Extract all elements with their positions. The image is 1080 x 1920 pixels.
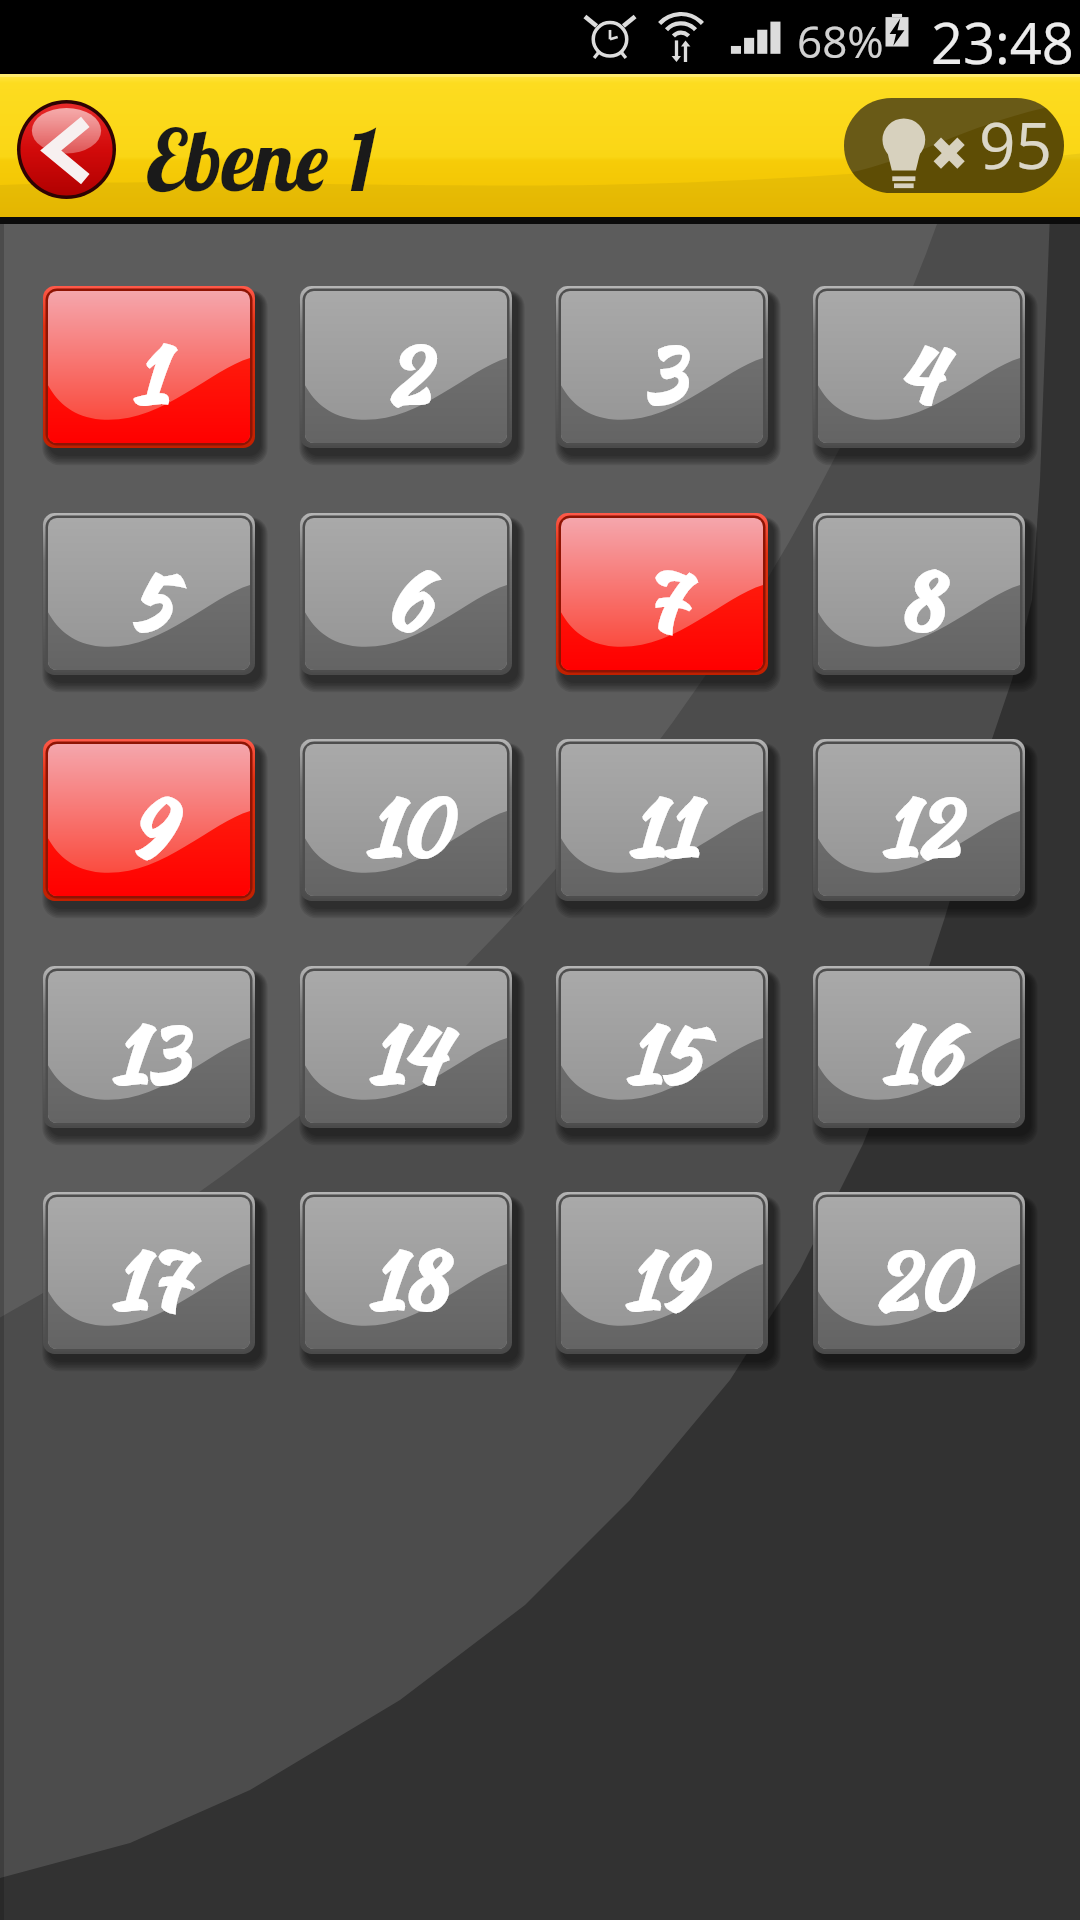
- staticText: 4: [898, 319, 942, 429]
- staticText: 1: [133, 319, 167, 429]
- staticText: 11: [629, 772, 697, 882]
- staticText: 16: [882, 999, 959, 1109]
- button[interactable]: 5: [43, 513, 255, 675]
- staticText: 11: [629, 772, 697, 882]
- staticText: 10: [366, 772, 449, 882]
- staticText: 15: [626, 999, 701, 1109]
- staticText: 14: [369, 999, 445, 1109]
- button[interactable]: 6: [300, 513, 512, 675]
- staticText: 12: [882, 772, 959, 882]
- button[interactable]: Hints: 95: [844, 98, 1064, 193]
- staticText: 1: [133, 319, 167, 429]
- staticText: 20: [874, 1225, 966, 1335]
- button[interactable]: 12: [813, 739, 1025, 901]
- button[interactable]: 19: [556, 1192, 768, 1354]
- button[interactable]: 10: [300, 739, 512, 901]
- staticText: 3: [642, 319, 685, 429]
- staticText: 10: [366, 772, 449, 882]
- staticText: 13: [112, 999, 188, 1109]
- staticText: 23:48: [931, 4, 1074, 78]
- staticText: 5: [130, 546, 171, 656]
- button[interactable]: 20: [813, 1192, 1025, 1354]
- staticText: 9: [129, 772, 172, 882]
- button[interactable]: 11: [556, 739, 768, 901]
- staticText: 7: [642, 546, 685, 656]
- staticText: 19: [625, 1225, 701, 1335]
- staticText: 18: [369, 1225, 446, 1335]
- button[interactable]: 18: [300, 1192, 512, 1354]
- staticText: Ebene 1: [146, 107, 376, 212]
- staticText: 5: [130, 546, 171, 656]
- staticText: 6: [386, 546, 429, 656]
- staticText: 17: [112, 1225, 188, 1335]
- staticText: 68%: [797, 11, 884, 71]
- button[interactable]: 7: [556, 513, 768, 675]
- button[interactable]: 8: [813, 513, 1025, 675]
- button[interactable]: 14: [300, 966, 512, 1128]
- staticText: 14: [369, 999, 445, 1109]
- staticText: 15: [626, 999, 701, 1109]
- staticText: 2: [386, 319, 429, 429]
- staticText: 17: [112, 1225, 188, 1335]
- button[interactable]: 17: [43, 1192, 255, 1354]
- button[interactable]: 2: [300, 286, 512, 448]
- staticText: 20: [874, 1225, 966, 1335]
- button[interactable]: 13: [43, 966, 255, 1128]
- staticText: 95: [979, 101, 1053, 188]
- button[interactable]: 1: [43, 286, 255, 448]
- button[interactable]: 4: [813, 286, 1025, 448]
- staticText: 16: [882, 999, 959, 1109]
- staticText: 7: [642, 546, 685, 656]
- staticText: 2: [386, 319, 429, 429]
- staticText: 8: [898, 546, 942, 656]
- staticText: 13: [112, 999, 188, 1109]
- button[interactable]: 15: [556, 966, 768, 1128]
- button[interactable]: 16: [813, 966, 1025, 1128]
- button[interactable]: 9: [43, 739, 255, 901]
- staticText: 8: [898, 546, 942, 656]
- button[interactable]: Back: [17, 100, 116, 199]
- button[interactable]: 3: [556, 286, 768, 448]
- staticText: 6: [386, 546, 429, 656]
- staticText: 19: [625, 1225, 701, 1335]
- staticText: 18: [369, 1225, 446, 1335]
- staticText: 4: [898, 319, 942, 429]
- staticText: 9: [129, 772, 172, 882]
- staticText: 12: [882, 772, 959, 882]
- staticText: 3: [642, 319, 685, 429]
